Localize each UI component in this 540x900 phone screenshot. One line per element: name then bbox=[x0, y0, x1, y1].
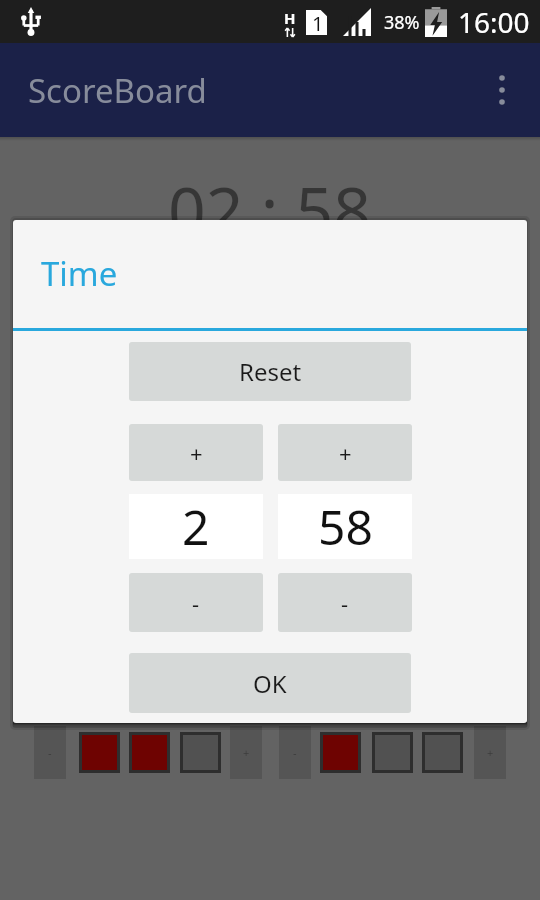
button[interactable]: Increase score bbox=[474, 726, 506, 779]
staticText: 38% bbox=[384, 10, 420, 35]
button[interactable]: Reset bbox=[129, 342, 411, 401]
staticText: - bbox=[293, 745, 297, 760]
button[interactable]: Decrease score bbox=[279, 726, 311, 779]
button[interactable]: Decrease minutes bbox=[129, 573, 263, 632]
staticText: 2 bbox=[182, 494, 210, 559]
button[interactable]: Decrease seconds bbox=[278, 573, 412, 632]
staticText: - bbox=[48, 745, 52, 760]
staticText: 02 : 58 bbox=[168, 164, 372, 254]
staticText: H bbox=[284, 8, 296, 28]
button[interactable]: OK bbox=[129, 653, 411, 713]
button[interactable]: 58 bbox=[278, 494, 412, 559]
staticText: 1 bbox=[312, 10, 324, 35]
staticText: 16:00 bbox=[458, 3, 530, 41]
button[interactable]: 2 bbox=[129, 494, 263, 559]
staticText: + bbox=[339, 438, 352, 468]
button[interactable]: Increase seconds bbox=[278, 424, 412, 481]
staticText: + bbox=[190, 438, 203, 468]
staticText: + bbox=[243, 745, 250, 760]
staticText: 58 bbox=[318, 494, 373, 559]
button[interactable]: Increase score bbox=[230, 726, 262, 779]
staticText: + bbox=[487, 745, 494, 760]
button[interactable]: Increase minutes bbox=[129, 424, 263, 481]
staticText: - bbox=[341, 588, 349, 618]
staticText: - bbox=[192, 588, 200, 618]
button[interactable]: More options bbox=[480, 68, 524, 112]
staticText: OK bbox=[253, 667, 287, 700]
button[interactable]: Decrease score bbox=[34, 726, 66, 779]
staticText: ScoreBoard bbox=[28, 68, 207, 113]
staticText: Time bbox=[41, 251, 118, 296]
staticText: Reset bbox=[239, 355, 302, 388]
